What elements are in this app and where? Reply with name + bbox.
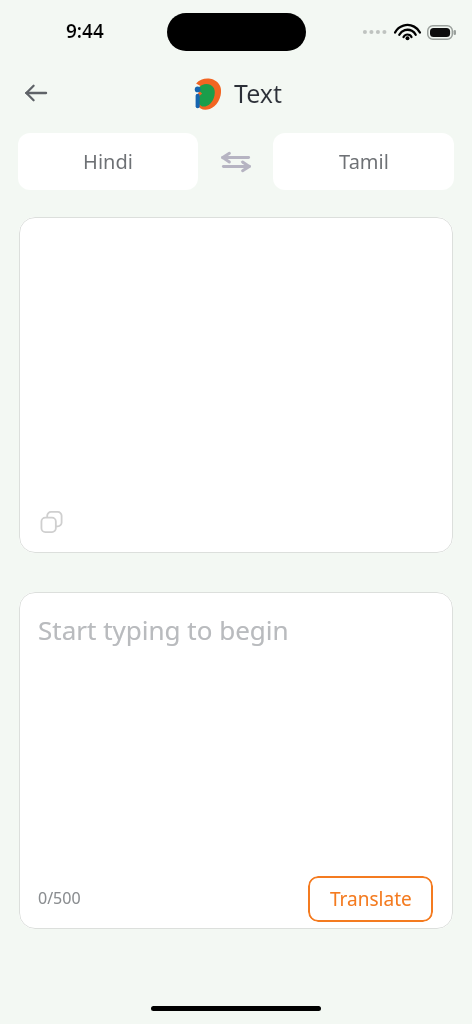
button[interactable]: Start typing to begin [19,592,453,929]
button[interactable]: Hindi [18,133,198,190]
button[interactable]: Swap languages [198,133,273,190]
staticText: 9:44 [66,18,104,44]
staticText: Tamil [339,148,389,175]
staticText: Text [234,76,283,110]
staticText: 0/500 [38,887,81,909]
staticText: Translate [330,886,412,912]
button[interactable]: Copy translation [33,503,71,541]
staticText: Hindi [83,148,133,175]
button[interactable]: Translate [308,876,433,922]
button[interactable]: Back [14,71,58,115]
staticText: Start typing to begin [38,612,289,647]
button[interactable]: Tamil [273,133,454,190]
